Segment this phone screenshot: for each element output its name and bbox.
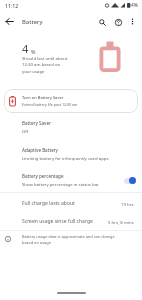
button[interactable]: Battery Saver — [0, 118, 142, 136]
button[interactable]: Back — [0, 12, 19, 31]
button[interactable]: Screen usage since full charge — [0, 216, 142, 227]
staticText: 5 hrs, 8 mins — [108, 219, 134, 225]
staticText: 19 hrs — [121, 201, 134, 207]
staticText: Extend battery life past 12:00 am — [22, 102, 78, 107]
button[interactable]: More options — [126, 15, 139, 28]
staticText: 4 — [22, 41, 29, 56]
button[interactable]: Turn on Battery Saver — [4, 89, 138, 113]
staticText: Should last until about 12:30 am based o… — [22, 55, 68, 75]
button[interactable]: Battery percentage — [0, 171, 142, 189]
button[interactable]: Full charge lasts about — [0, 198, 142, 209]
staticText: 4% — [131, 2, 138, 9]
staticText: Battery percentage — [22, 173, 64, 179]
staticText: Battery usage data is approximate and ca… — [22, 234, 117, 245]
staticText: Limiting battery for infrequently used a… — [22, 155, 109, 161]
staticText: % — [31, 48, 36, 55]
staticText: Turn on Battery Saver — [22, 95, 64, 100]
staticText: 11:12 — [5, 2, 19, 9]
staticText: Full charge lasts about — [22, 200, 121, 207]
staticText: Battery — [22, 18, 43, 26]
button[interactable]: Adaptive Battery — [0, 145, 142, 163]
staticText: Show battery percentage in status bar — [22, 181, 99, 187]
staticText: Screen usage since full charge — [22, 218, 108, 225]
button[interactable]: Help — [111, 15, 125, 29]
staticText: Off — [22, 128, 29, 134]
button[interactable]: Search — [95, 15, 109, 29]
staticText: Battery Saver — [22, 120, 51, 126]
staticText: Adaptive Battery — [22, 147, 58, 153]
